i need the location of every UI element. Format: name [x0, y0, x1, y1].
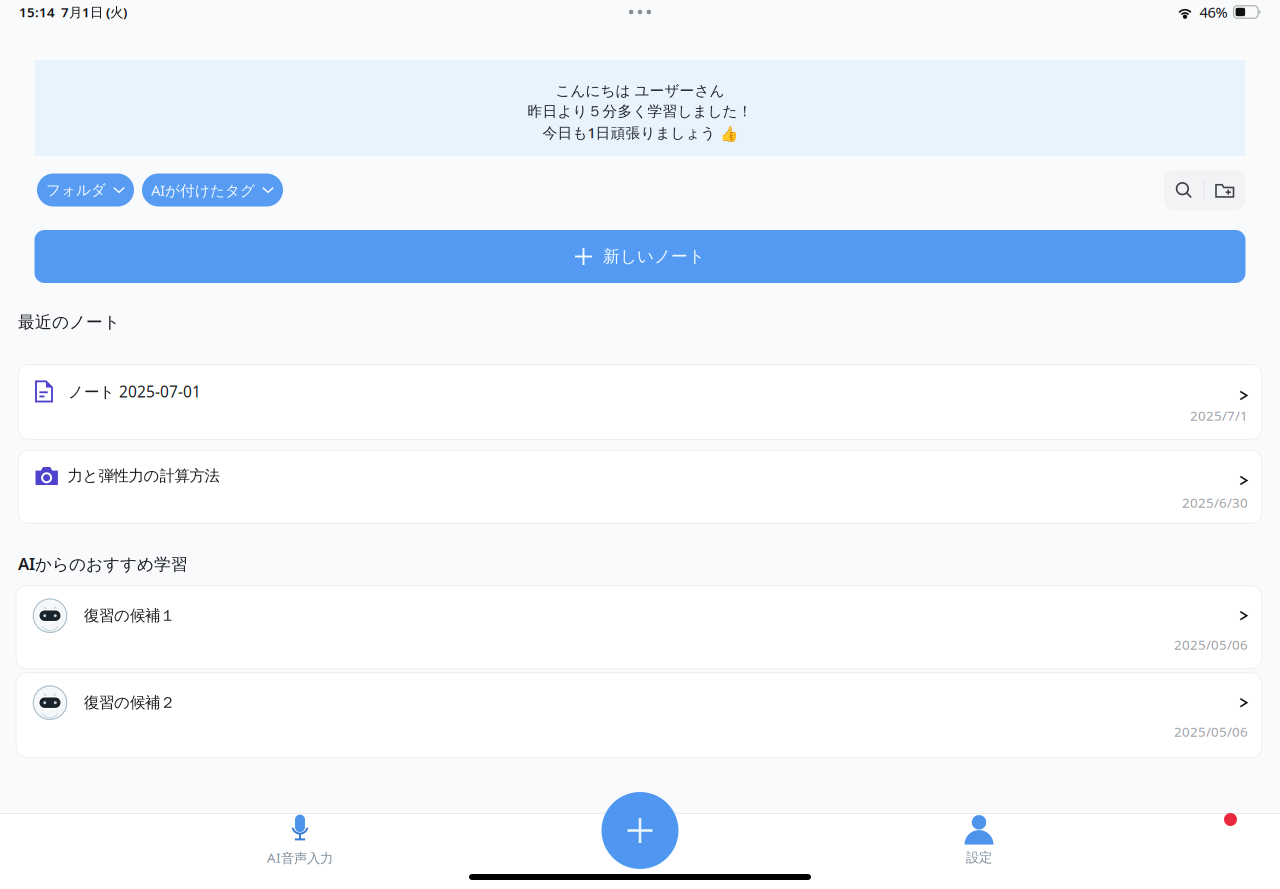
button[interactable]: 追加 — [601, 792, 678, 869]
staticText: 復習の候補１ — [84, 606, 175, 625]
staticText: 2025/05/06 — [1174, 723, 1248, 740]
staticText: AIが付けたタグ — [151, 180, 255, 200]
button[interactable]: 復習の候補１ — [16, 586, 1262, 669]
button[interactable]: フォルダ — [37, 173, 134, 206]
staticText: 新しいノート — [603, 246, 705, 267]
staticText: フォルダ — [46, 181, 106, 199]
staticText: 15:14 7月1日 (火) — [19, 3, 127, 21]
button[interactable]: 力と弾性力の計算方法 — [18, 450, 1262, 523]
staticText: 2025/05/06 — [1174, 636, 1248, 653]
staticText: 最近のノート — [18, 312, 120, 332]
button[interactable]: 復習の候補２ — [16, 673, 1262, 758]
button[interactable]: AI音声入力 — [240, 814, 360, 866]
staticText: 46% — [1199, 2, 1227, 22]
staticText: 2025/7/1 — [1190, 407, 1248, 424]
staticText: 設定 — [966, 849, 992, 866]
button[interactable]: ノート 2025-07-01 — [18, 364, 1262, 439]
staticText: 力と弾性力の計算方法 — [67, 466, 219, 485]
staticText: こんにちは ユーザーさん — [555, 82, 724, 100]
button[interactable]: 新しいフォルダ — [1204, 170, 1245, 210]
staticText: 昨日より５分多く学習しました！ — [527, 102, 752, 120]
button[interactable]: 設定 — [919, 814, 1039, 866]
button[interactable]: 検索 — [1164, 170, 1203, 210]
staticText: ノート 2025-07-01 — [68, 381, 201, 402]
staticText: AI音声入力 — [267, 849, 333, 866]
staticText: 2025/6/30 — [1182, 494, 1248, 511]
button[interactable]: 新しいノート — [34, 230, 1245, 283]
staticText: 復習の候補２ — [84, 693, 175, 712]
button[interactable]: AIが付けたタグ — [142, 173, 283, 206]
staticText: AIからのおすすめ学習 — [18, 552, 188, 575]
staticText: 今日も1日頑張りましょう 👍 — [542, 123, 737, 142]
